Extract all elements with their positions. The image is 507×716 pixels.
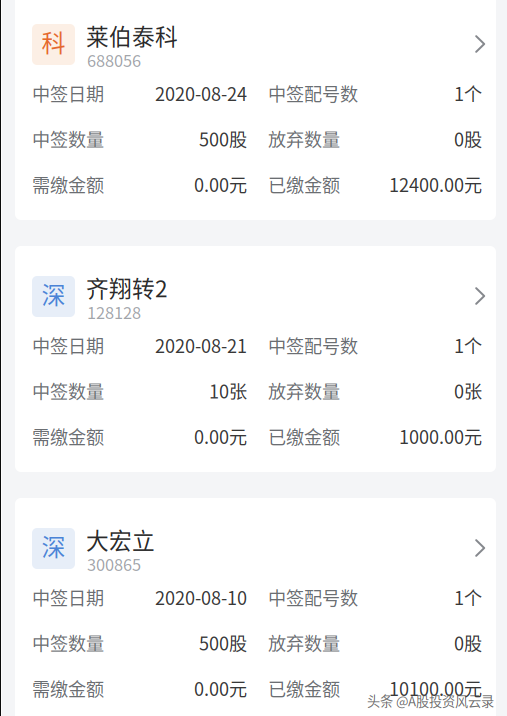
staticText: 688056 [87, 48, 141, 72]
staticText: 中签数量 [32, 629, 104, 656]
staticText: 1个 [454, 332, 482, 358]
staticText: 10100.00元 [389, 675, 482, 701]
staticText: 0张 [454, 377, 482, 404]
staticText: 中签配号数 [268, 584, 358, 610]
staticText: 科 [41, 24, 65, 59]
staticText: 500股 [199, 629, 247, 656]
staticText: 放弃数量 [268, 629, 340, 656]
button[interactable]: 深 [15, 498, 496, 580]
staticText: 0股 [454, 125, 482, 152]
staticText: 128128 [87, 300, 141, 324]
button[interactable]: 科 [15, 0, 496, 76]
staticText: 需缴金额 [32, 423, 104, 449]
staticText: 需缴金额 [32, 171, 104, 197]
button[interactable]: 深 [15, 246, 496, 328]
staticText: 中签日期 [32, 80, 104, 106]
staticText: 2020-08-10 [155, 584, 247, 610]
staticText: 10张 [209, 377, 247, 404]
staticText: 莱伯泰科 [86, 19, 178, 52]
staticText: 500股 [199, 125, 247, 152]
staticText: 1个 [454, 80, 482, 106]
staticText: 已缴金额 [268, 675, 340, 701]
staticText: 2020-08-24 [155, 80, 247, 106]
staticText: 0.00元 [194, 171, 247, 197]
staticText: 大宏立 [86, 523, 155, 556]
staticText: 深 [41, 528, 65, 563]
staticText: 中签日期 [32, 584, 104, 610]
staticText: 需缴金额 [32, 675, 104, 701]
staticText: 中签数量 [32, 125, 104, 152]
staticText: 已缴金额 [268, 423, 340, 449]
staticText: 中签配号数 [268, 332, 358, 358]
staticText: 中签日期 [32, 332, 104, 358]
staticText: 齐翔转2 [86, 271, 168, 304]
staticText: 0股 [454, 629, 482, 656]
staticText: 12400.00元 [389, 171, 482, 197]
staticText: 深 [41, 276, 65, 311]
staticText: 放弃数量 [268, 377, 340, 404]
staticText: 已缴金额 [268, 171, 340, 197]
staticText: 放弃数量 [268, 125, 340, 152]
staticText: 中签数量 [32, 377, 104, 404]
staticText: 1个 [454, 584, 482, 610]
staticText: 2020-08-21 [155, 332, 247, 358]
staticText: 0.00元 [194, 675, 247, 701]
staticText: 头条 @A股投资风云录 [367, 691, 494, 710]
staticText: 0.00元 [194, 423, 247, 449]
staticText: 1000.00元 [399, 423, 482, 449]
staticText: 300865 [87, 552, 141, 576]
staticText: 中签配号数 [268, 80, 358, 106]
